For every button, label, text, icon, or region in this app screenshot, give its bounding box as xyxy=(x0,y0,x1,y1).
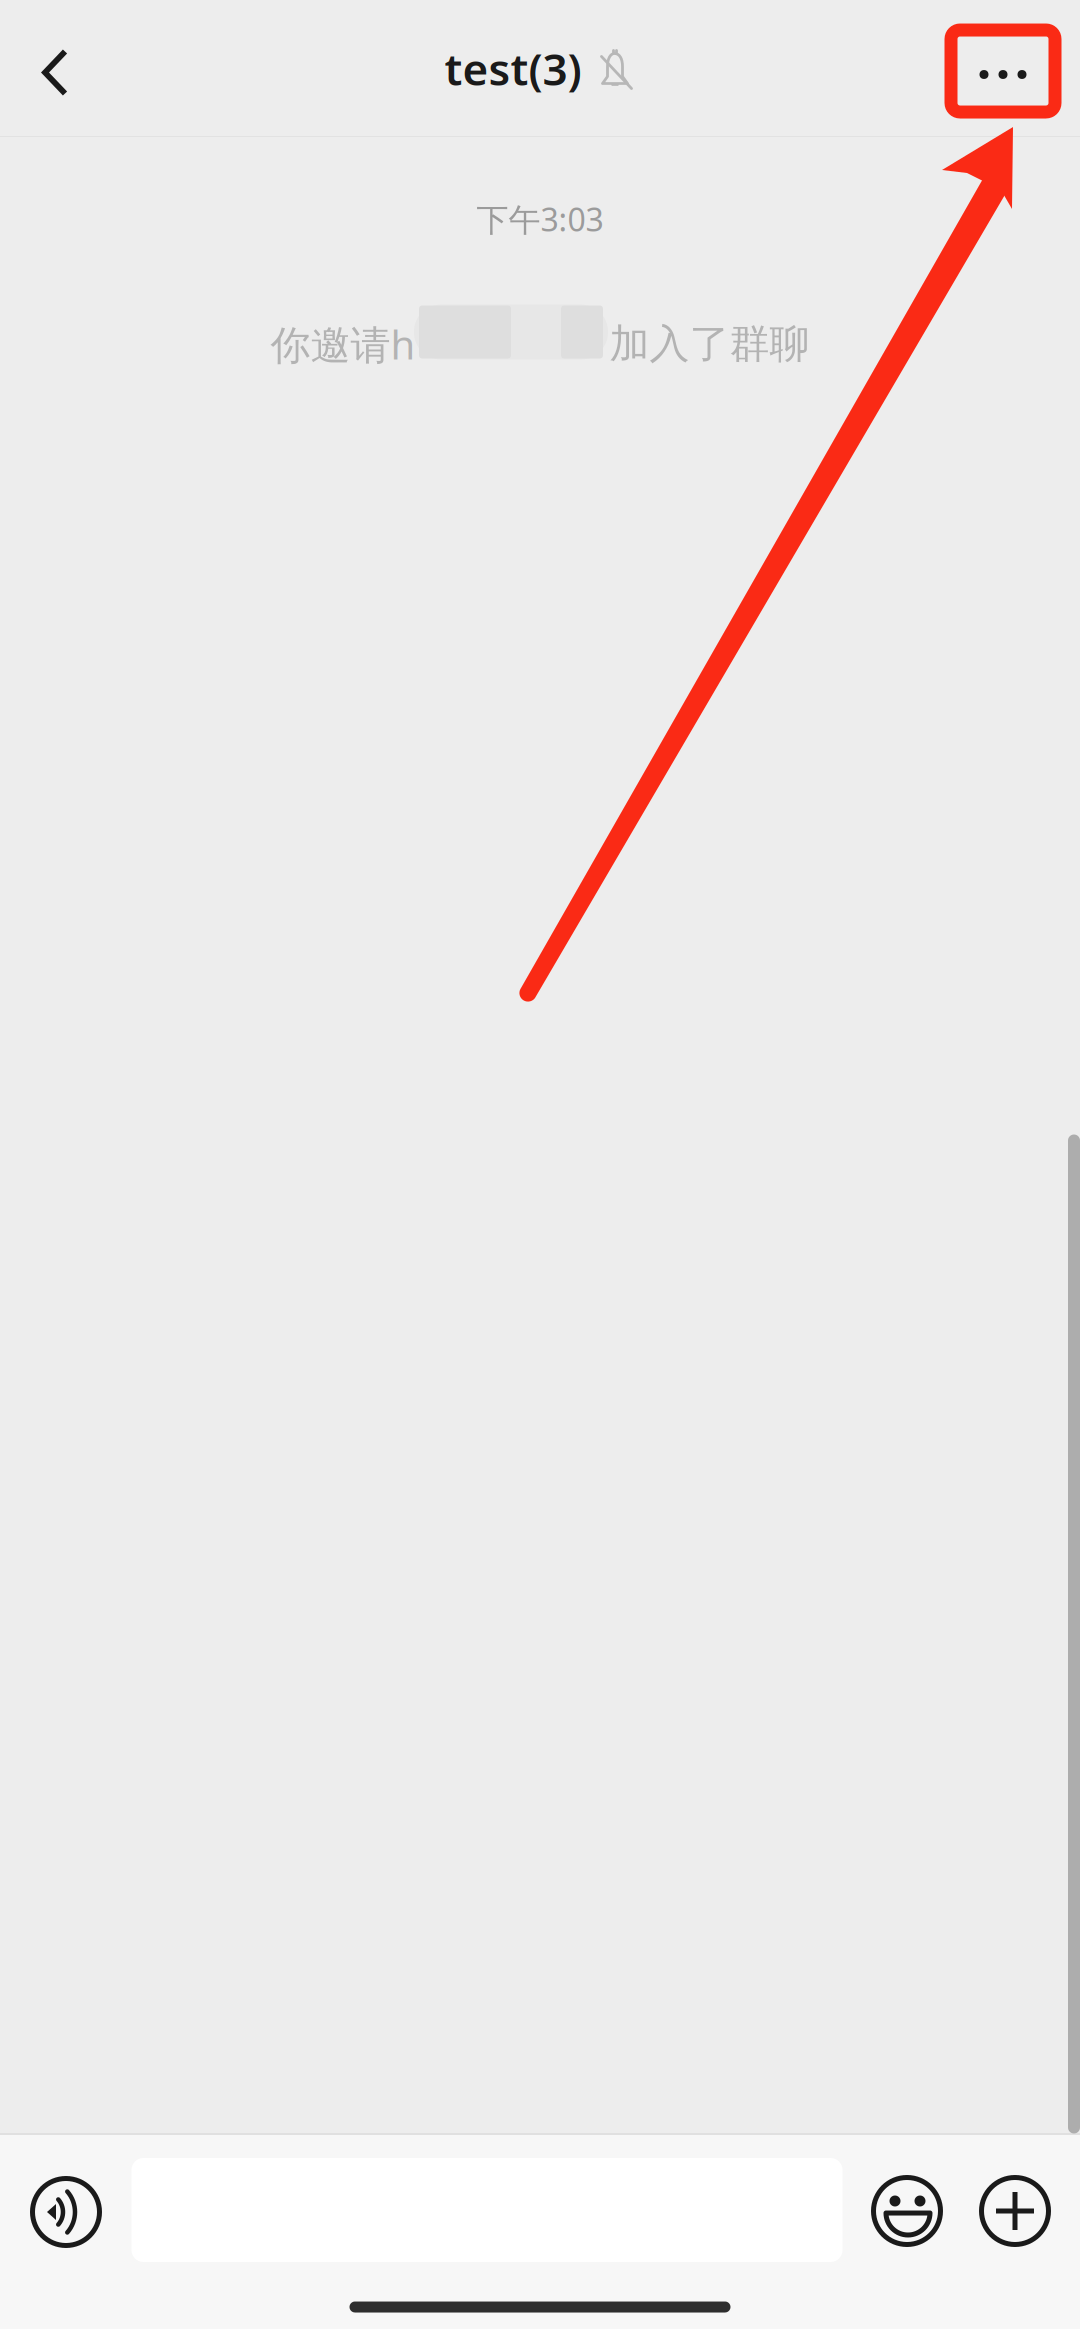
button[interactable]: More functions xyxy=(963,2151,1067,2271)
staticText: 下午3:03 xyxy=(476,198,603,240)
button[interactable]: Emoji xyxy=(855,2151,959,2271)
staticText: test(3) xyxy=(444,39,581,98)
staticText: 加入了群聊 xyxy=(609,319,809,368)
staticText: 你邀请h xyxy=(270,317,415,370)
button[interactable]: Back xyxy=(0,0,104,137)
button[interactable]: More options xyxy=(945,0,1061,137)
button[interactable]: Voice message xyxy=(14,2152,118,2272)
